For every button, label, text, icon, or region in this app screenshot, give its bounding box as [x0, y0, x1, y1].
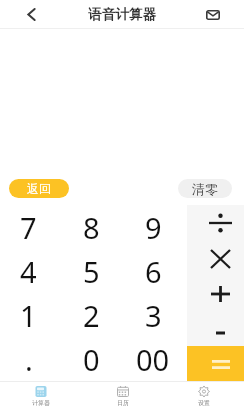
button[interactable]: 等于 — [187, 346, 244, 381]
button[interactable]: 1 — [0, 293, 63, 337]
staticText: 9 — [145, 208, 162, 247]
staticText: 7 — [20, 208, 37, 247]
staticText: 设置 — [198, 399, 210, 407]
staticText: 1 — [20, 296, 37, 335]
staticText: 8 — [83, 208, 100, 247]
button[interactable]: 乘 — [187, 241, 244, 276]
staticText: 6 — [145, 252, 162, 291]
button[interactable]: 8 — [63, 205, 125, 249]
staticText: 语音计算器 — [88, 6, 157, 23]
staticText: 3 — [145, 296, 162, 335]
button[interactable]: 加 — [187, 276, 244, 311]
button[interactable]: 设置 — [163, 382, 244, 410]
staticText: 日历 — [117, 399, 129, 407]
staticText: 0 — [83, 340, 100, 379]
button[interactable]: 5 — [63, 249, 125, 293]
staticText: 清零 — [192, 181, 218, 197]
staticText: 00 — [136, 340, 170, 379]
button[interactable]: 0 — [63, 337, 125, 381]
button[interactable]: 2 — [63, 293, 125, 337]
button[interactable]: 9 — [125, 205, 187, 249]
staticText: 2 — [83, 296, 100, 335]
button[interactable]: 返回 — [9, 179, 69, 198]
button[interactable]: 消息 — [198, 0, 228, 29]
button[interactable]: 日历 — [82, 382, 163, 410]
button[interactable]: 6 — [125, 249, 187, 293]
button[interactable]: 3 — [125, 293, 187, 337]
button[interactable]: 7 — [0, 205, 63, 249]
staticText: 4 — [20, 252, 37, 291]
button[interactable]: 计算器 — [0, 382, 82, 410]
staticText: . — [25, 340, 33, 379]
button[interactable]: 4 — [0, 249, 63, 293]
button[interactable]: 返回 — [16, 0, 46, 29]
staticText: 5 — [83, 252, 100, 291]
button[interactable]: 减 — [187, 311, 244, 346]
staticText: 返回 — [27, 181, 51, 196]
button[interactable]: . — [0, 337, 63, 381]
button[interactable]: 除 — [187, 205, 244, 241]
button[interactable]: 清零 — [178, 179, 232, 198]
button[interactable]: 00 — [125, 337, 187, 381]
staticText: 计算器 — [32, 399, 50, 407]
